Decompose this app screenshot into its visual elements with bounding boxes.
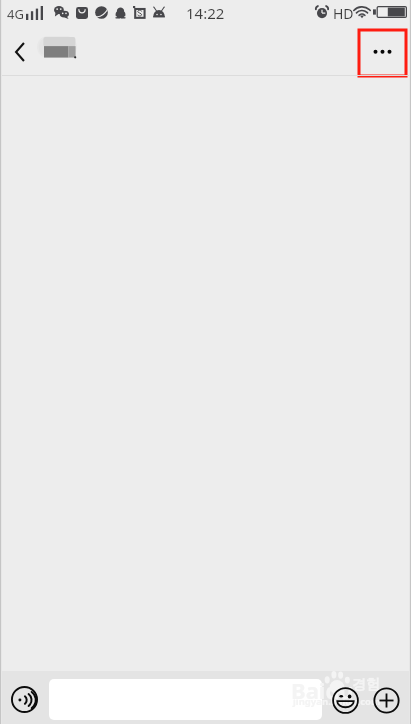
staticText: HD	[333, 4, 354, 23]
button[interactable]: More options	[359, 30, 406, 76]
button[interactable]: Emoji	[324, 679, 367, 722]
staticText: jingyan.baidu.com	[293, 695, 381, 708]
staticText: 14:22	[186, 3, 225, 23]
staticText: 4G	[7, 5, 24, 23]
staticText: Baidu	[291, 675, 354, 705]
button[interactable]: Voice input	[2, 677, 46, 721]
button[interactable]: More functions	[365, 679, 408, 722]
button[interactable]: Back	[0, 28, 40, 72]
staticText: 경험	[352, 676, 380, 694]
